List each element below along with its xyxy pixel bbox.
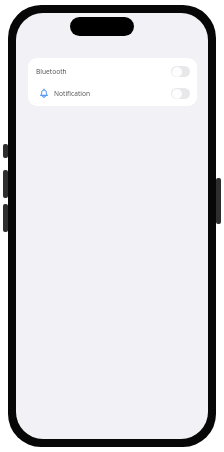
button[interactable]: Bluetooth <box>28 60 197 82</box>
staticText: Notification <box>54 89 91 98</box>
button[interactable]: Notification <box>28 82 197 104</box>
staticText: Bluetooth <box>36 67 67 76</box>
button[interactable]: Bluetooth toggle, off <box>171 66 190 77</box>
button[interactable]: Notification toggle, off <box>171 88 190 99</box>
